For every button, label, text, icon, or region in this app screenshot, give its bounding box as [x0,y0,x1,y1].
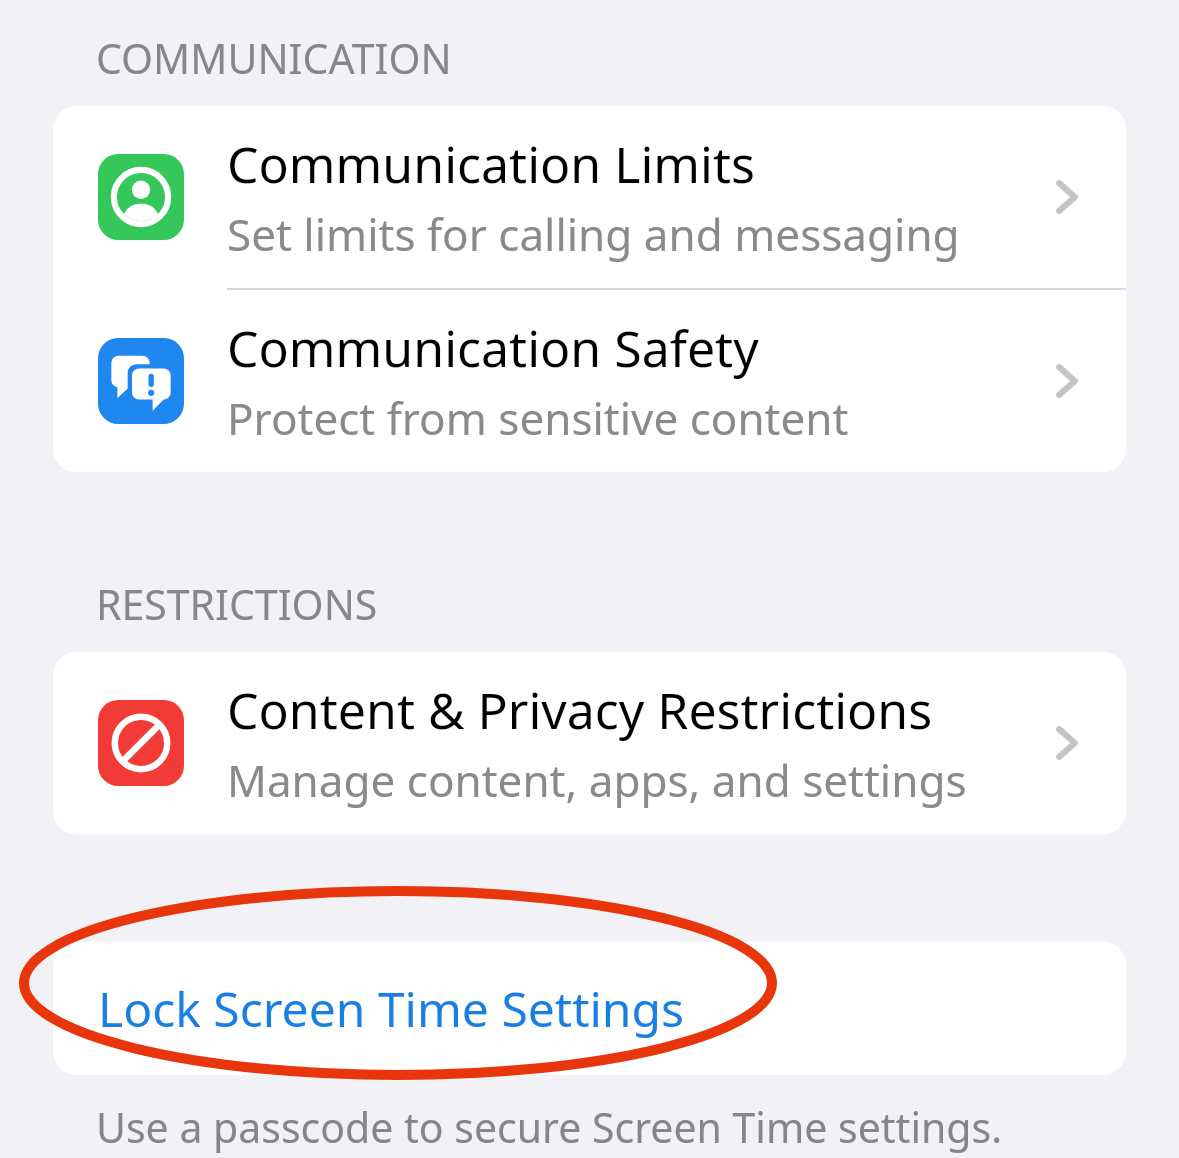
other: Open [1044,720,1090,766]
other: Open [1044,174,1090,220]
staticText: Content & Privacy Restrictions [227,676,933,744]
staticText: Lock Screen Time Settings [98,976,685,1041]
other: Open [1044,358,1090,404]
button[interactable]: Communication Safety [53,290,1126,472]
staticText: COMMUNICATION [96,30,452,86]
staticText: Set limits for calling and messaging [227,204,960,264]
staticText: Communication Limits [227,130,755,198]
staticText: Use a passcode to secure Screen Time set… [96,1099,1003,1155]
staticText: Manage content, apps, and settings [227,750,967,810]
staticText: Protect from sensitive content [227,388,849,448]
button[interactable]: Lock Screen Time Settings [53,942,1126,1075]
button[interactable]: Communication Limits [53,106,1126,288]
button[interactable]: Content & Privacy Restrictions [53,652,1126,834]
staticText: Communication Safety [227,314,759,382]
staticText: RESTRICTIONS [96,576,378,632]
